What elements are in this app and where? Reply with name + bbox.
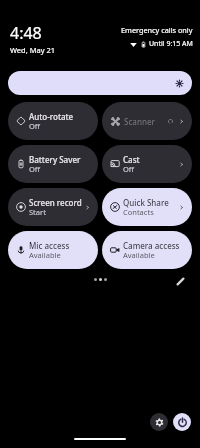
staticText: Quick Share (123, 197, 169, 208)
staticText: Auto-rotate (29, 111, 74, 122)
staticText: Emergency calls only (121, 25, 193, 35)
button[interactable]: Camera access (102, 231, 192, 269)
button[interactable]: Settings (150, 413, 168, 431)
button[interactable]: Quick Share (102, 188, 192, 226)
button[interactable]: Cast (102, 145, 192, 183)
staticText: Scanner (124, 116, 155, 127)
staticText: Start (29, 207, 46, 217)
button[interactable]: Edit tiles (172, 273, 188, 289)
staticText: Mic access (29, 240, 70, 251)
button[interactable]: Screen record (8, 188, 98, 226)
staticText: Battery Saver (29, 154, 81, 165)
staticText: Off (29, 164, 41, 174)
button[interactable]: Battery Saver (8, 145, 98, 183)
staticText: Screen record (29, 197, 82, 208)
staticText: Wed, May 21 (10, 45, 55, 55)
button[interactable]: Power (173, 413, 191, 431)
staticText: Camera access (123, 240, 180, 251)
staticText: Off (123, 164, 135, 174)
staticText: Cast (123, 154, 140, 165)
staticText: Off (29, 121, 41, 131)
button[interactable]: Mic access (8, 231, 98, 269)
staticText: Available (29, 250, 61, 260)
staticText: Contacts (123, 207, 154, 217)
button[interactable]: Scanner (102, 102, 192, 140)
button[interactable]: Brightness (8, 71, 192, 95)
button[interactable]: Auto-rotate (8, 102, 98, 140)
staticText: 4:48 (10, 22, 42, 44)
staticText: Until 9:15 AM (149, 39, 193, 49)
staticText: Available (123, 250, 155, 260)
